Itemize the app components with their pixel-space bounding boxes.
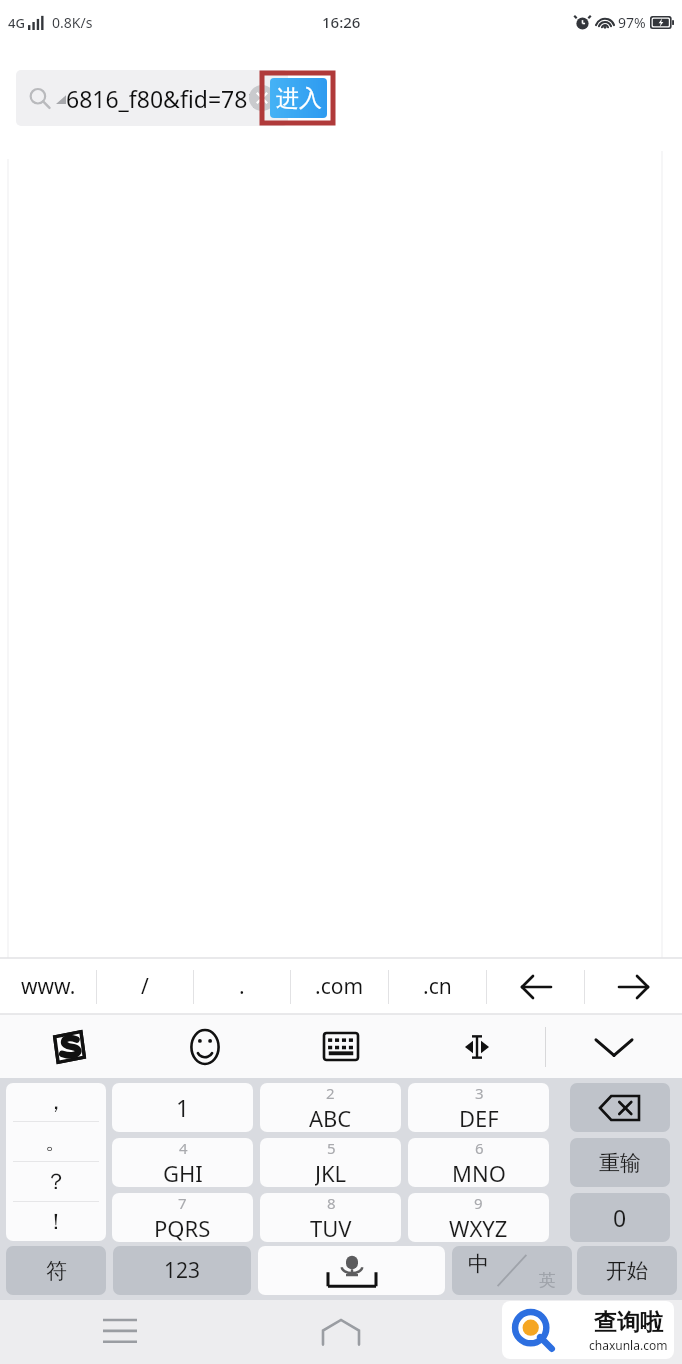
button[interactable]: 2 bbox=[260, 1083, 401, 1132]
button[interactable]: Home bbox=[311, 1302, 371, 1362]
staticText: 8 bbox=[327, 1193, 336, 1213]
button[interactable]: / bbox=[97, 959, 193, 1014]
button[interactable]: 4 bbox=[112, 1138, 253, 1187]
staticText: DEF bbox=[459, 1103, 499, 1132]
button[interactable]: 9 bbox=[408, 1193, 549, 1242]
button[interactable]: 中 bbox=[452, 1246, 572, 1295]
staticText: 4G bbox=[8, 14, 25, 32]
staticText: 1 bbox=[176, 1092, 190, 1123]
staticText: ， bbox=[45, 1088, 67, 1116]
staticText: 6 bbox=[475, 1138, 484, 1158]
staticText: MNO bbox=[452, 1158, 506, 1187]
staticText: 0.8K/s bbox=[52, 13, 93, 32]
button[interactable]: 8 bbox=[260, 1193, 401, 1242]
button[interactable]: 7 bbox=[112, 1193, 253, 1242]
button[interactable]: 6 bbox=[408, 1138, 549, 1187]
staticText: 4 bbox=[179, 1138, 188, 1158]
staticText: .com bbox=[315, 972, 364, 1001]
staticText: 2 bbox=[326, 1083, 335, 1103]
button[interactable]: Space / Voice bbox=[258, 1246, 445, 1295]
button[interactable]: Hide keyboard bbox=[546, 1015, 682, 1078]
staticText: www. bbox=[21, 972, 76, 1001]
staticText: 开始 bbox=[606, 1258, 648, 1284]
button[interactable]: .cn bbox=[389, 959, 486, 1014]
staticText: ！ bbox=[45, 1208, 67, 1236]
button[interactable]: .com bbox=[291, 959, 388, 1014]
staticText: ABC bbox=[309, 1103, 352, 1132]
staticText: 查询啦 bbox=[594, 1308, 663, 1337]
button[interactable]: Recents bbox=[90, 1302, 150, 1362]
button[interactable]: 1 bbox=[112, 1083, 253, 1132]
button[interactable]: Back bbox=[487, 959, 584, 1014]
staticText: 进入 bbox=[276, 84, 322, 113]
button[interactable]: Forward bbox=[585, 959, 682, 1014]
button[interactable]: 3 bbox=[408, 1083, 549, 1132]
staticText: 。 bbox=[45, 1128, 67, 1156]
button[interactable]: 6816_f80&fid=781534866 bbox=[16, 70, 288, 126]
staticText: 5 bbox=[327, 1138, 336, 1158]
staticText: 7 bbox=[178, 1193, 187, 1213]
staticText: 英 bbox=[539, 1270, 556, 1291]
staticText: 9 bbox=[474, 1193, 483, 1213]
button[interactable]: 0 bbox=[570, 1193, 670, 1242]
staticText: 中 bbox=[468, 1251, 489, 1277]
staticText: 6816_f80&fid=781534866 bbox=[66, 83, 288, 114]
button[interactable]: 123 bbox=[113, 1246, 251, 1295]
staticText: PQRS bbox=[154, 1213, 211, 1242]
staticText: 0 bbox=[613, 1202, 627, 1233]
button[interactable]: Clear bbox=[249, 85, 275, 111]
button[interactable]: 符 bbox=[6, 1246, 106, 1295]
staticText: . bbox=[239, 972, 245, 1001]
button[interactable]: . bbox=[194, 959, 290, 1014]
staticText: ？ bbox=[45, 1168, 67, 1196]
staticText: .cn bbox=[423, 972, 452, 1001]
staticText: TUV bbox=[310, 1213, 352, 1242]
button[interactable]: 进入 bbox=[270, 78, 327, 118]
button[interactable]: ， bbox=[6, 1083, 106, 1241]
staticText: JKL bbox=[315, 1158, 347, 1187]
staticText: 123 bbox=[164, 1256, 201, 1285]
staticText: WXYZ bbox=[449, 1213, 508, 1242]
button[interactable]: Move cursor bbox=[409, 1015, 545, 1078]
button[interactable]: 重输 bbox=[570, 1138, 670, 1187]
staticText: 16:26 bbox=[322, 12, 361, 32]
button[interactable]: Emoji bbox=[137, 1015, 273, 1078]
button[interactable]: Backspace bbox=[570, 1083, 670, 1132]
staticText: 重输 bbox=[599, 1150, 641, 1176]
staticText: GHI bbox=[163, 1158, 203, 1187]
staticText: 97% bbox=[618, 13, 646, 32]
staticText: / bbox=[141, 972, 149, 1001]
button[interactable]: Keyboard layout bbox=[273, 1015, 409, 1078]
staticText: 3 bbox=[475, 1083, 484, 1103]
staticText: chaxunla.com bbox=[589, 1337, 668, 1353]
button[interactable]: Sogou bbox=[0, 1015, 137, 1078]
button[interactable]: 开始 bbox=[577, 1246, 677, 1295]
button[interactable]: www. bbox=[0, 959, 96, 1014]
staticText: 符 bbox=[46, 1258, 67, 1284]
button[interactable]: 5 bbox=[260, 1138, 401, 1187]
